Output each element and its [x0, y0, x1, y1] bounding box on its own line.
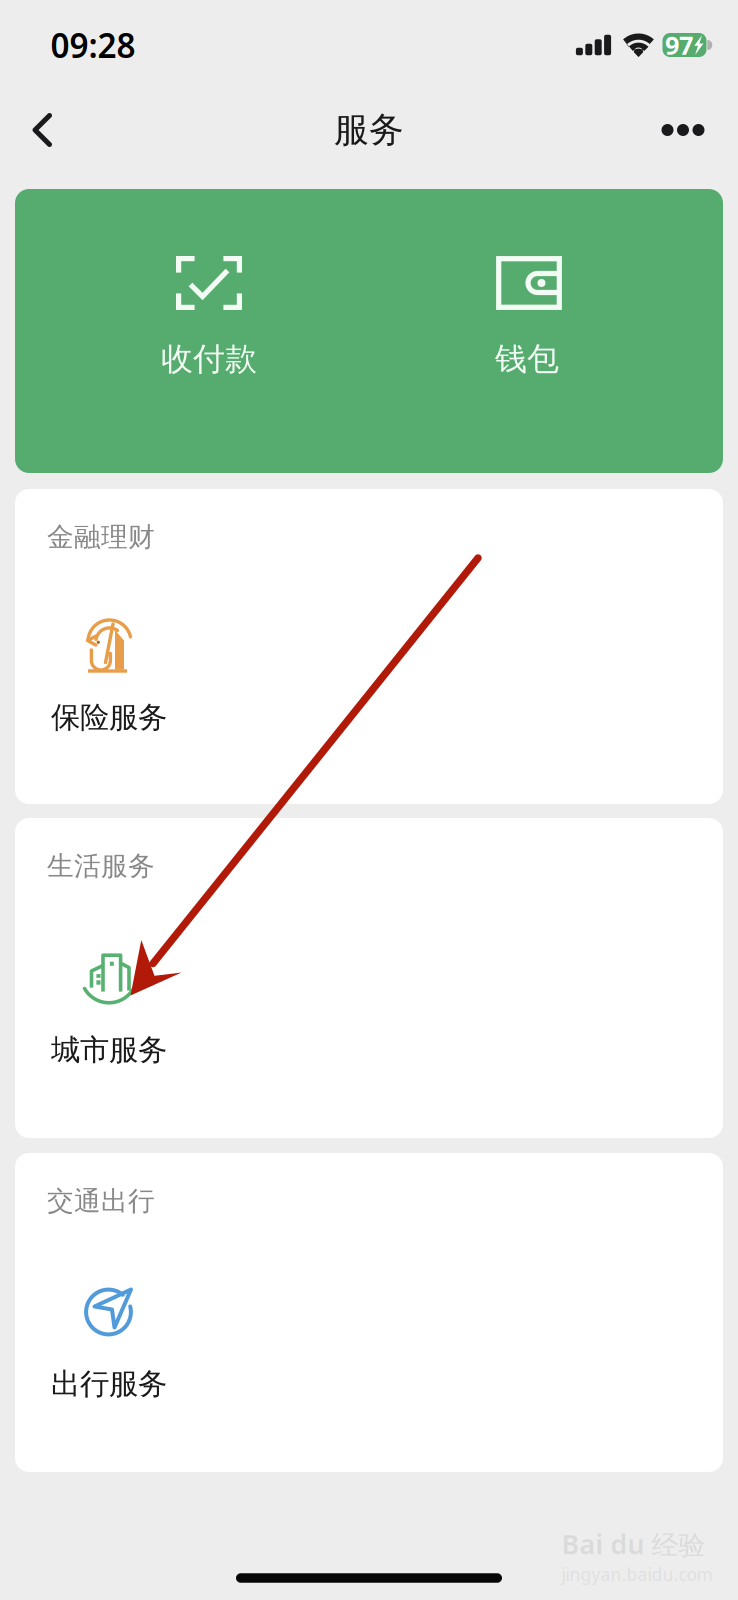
staticText: 09:28 [50, 23, 135, 67]
staticText: 保险服务 [51, 699, 167, 735]
button[interactable]: 钱包 [369, 189, 723, 473]
staticText: 97 [665, 28, 693, 62]
button[interactable]: 收付款 [15, 189, 369, 473]
staticText: jingyan.baidu.com [561, 1563, 712, 1586]
staticText: 金融理财 [47, 521, 155, 553]
button[interactable]: Back [5, 93, 79, 167]
staticText: 收付款 [161, 339, 257, 379]
button[interactable]: 保险服务 [29, 579, 259, 729]
button[interactable]: More [646, 93, 720, 167]
staticText: 钱包 [495, 339, 559, 379]
staticText: Bai du 经验 [561, 1526, 705, 1562]
staticText: 生活服务 [47, 850, 155, 882]
staticText: 城市服务 [51, 1032, 167, 1068]
button[interactable]: 出行服务 [29, 1243, 259, 1393]
button[interactable]: 城市服务 [29, 908, 259, 1058]
staticText: 服务 [334, 109, 404, 151]
staticText: 交通出行 [47, 1185, 155, 1217]
staticText: 出行服务 [51, 1366, 167, 1402]
